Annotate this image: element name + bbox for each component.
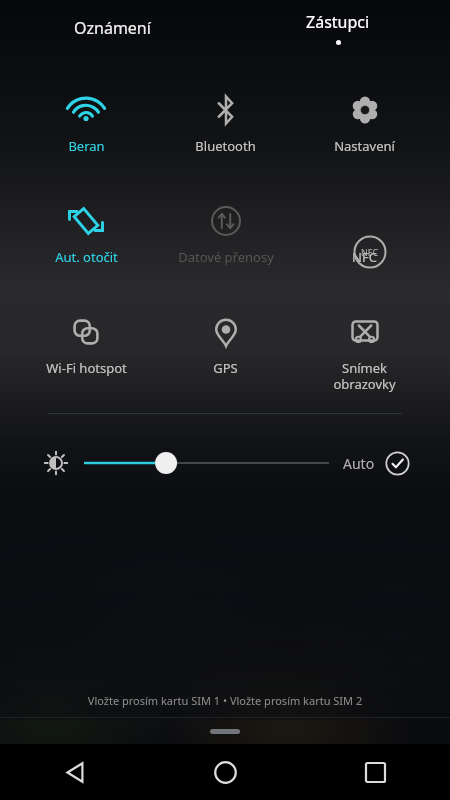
staticText: Nastavení xyxy=(334,137,395,155)
button[interactable]: Home xyxy=(150,744,300,800)
staticText: Wi-Fi hotspot xyxy=(46,359,127,377)
button[interactable]: Mobile data xyxy=(156,198,295,266)
staticText: NFC xyxy=(361,246,379,258)
staticText: Oznámení xyxy=(74,17,151,39)
staticText: Beran xyxy=(68,137,105,155)
button[interactable]: Bluetooth xyxy=(156,87,295,155)
staticText: NFC xyxy=(352,248,377,266)
button[interactable]: Auto xyxy=(343,451,410,476)
other: Brightness xyxy=(42,449,70,477)
staticText: Auto xyxy=(343,454,375,473)
button[interactable]: NFC xyxy=(295,198,434,266)
staticText: Datové přenosy xyxy=(178,248,274,266)
button[interactable]: Settings xyxy=(295,87,434,155)
staticText: Bluetooth xyxy=(195,137,256,155)
button[interactable]: Brightness slider xyxy=(84,448,329,478)
button[interactable]: Auto rotate xyxy=(16,198,156,266)
button[interactable]: Collapse panel xyxy=(0,718,450,744)
button[interactable]: Back xyxy=(0,744,150,800)
staticText: GPS xyxy=(213,359,238,377)
button[interactable]: Wi-Fi xyxy=(16,87,156,155)
staticText: Zástupci xyxy=(306,11,370,33)
staticText: Vložte prosím kartu SIM 1 • Vložte prosí… xyxy=(0,693,450,708)
staticText: Aut. otočit xyxy=(55,248,118,266)
button[interactable]: Zástupci xyxy=(225,0,450,56)
button[interactable]: Screenshot xyxy=(295,309,434,392)
button[interactable]: Hotspot xyxy=(16,309,156,377)
staticText: Snímek obrazovky xyxy=(333,359,396,392)
button[interactable]: GPS xyxy=(156,309,295,377)
button[interactable]: Oznámení xyxy=(0,0,225,56)
button[interactable]: Recent apps xyxy=(300,744,450,800)
